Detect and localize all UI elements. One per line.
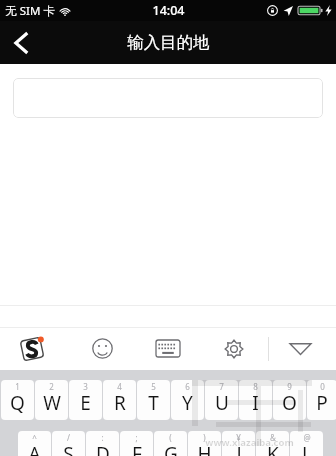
staticText: 9 [287,381,292,392]
button[interactable]: 6 [171,380,204,420]
button[interactable]: 2 [35,380,68,420]
staticText: 2 [49,381,54,392]
staticText: W [43,390,61,416]
staticText: 6 [185,381,190,392]
staticText: R [114,390,126,416]
button[interactable]: Keyboard layout [146,327,190,370]
staticText: G [164,441,178,456]
button[interactable]: 7 [205,380,238,420]
button[interactable]: 0 [307,380,336,420]
staticText: ^ [32,432,37,443]
staticText: D [96,441,110,456]
staticText: 4 [117,381,122,392]
staticText: 14:04 [152,2,185,19]
staticText: J [236,441,242,456]
staticText: 3 [83,381,88,392]
staticText: 1 [15,381,20,392]
staticText: / [67,432,70,443]
button[interactable] [13,78,323,118]
staticText: 8 [253,381,258,392]
button[interactable]: Hide keyboard [278,327,322,370]
staticText: ) [203,432,206,443]
staticText: P [316,390,328,416]
button[interactable]: Back [0,21,44,64]
button[interactable]: Settings [212,327,256,370]
staticText: ; [135,432,138,443]
staticText: Q [10,390,25,416]
staticText: S [63,441,74,456]
staticText: I [252,390,259,416]
staticText: E [80,390,91,416]
button[interactable]: : [86,431,119,456]
staticText: 输入目的地 [127,32,210,53]
staticText: H [197,441,212,456]
button[interactable]: ; [120,431,153,456]
button[interactable]: 3 [69,380,102,420]
button[interactable]: ) [188,431,221,456]
staticText: @ [303,432,311,443]
staticText: 无 SIM 卡 [5,3,55,19]
staticText: T [148,390,159,416]
staticText: www.xiazaiba.com [205,436,294,449]
staticText: ( [169,432,172,443]
staticText: 7 [219,381,224,392]
button[interactable]: 5 [137,380,170,420]
button[interactable]: Sogou input method [9,327,55,370]
staticText: & [270,432,276,443]
button[interactable]: ^ [18,431,51,456]
button[interactable]: / [52,431,85,456]
staticText: U [215,390,229,416]
button[interactable]: 8 [239,380,272,420]
button[interactable]: ( [154,431,187,456]
button[interactable]: & [256,431,289,456]
button[interactable]: @ [290,431,323,456]
button[interactable]: 4 [103,380,136,420]
staticText: L [302,441,312,456]
staticText: ¥ [236,432,241,443]
staticText: A [28,441,41,456]
staticText: O [282,390,297,416]
button[interactable]: 9 [273,380,306,420]
staticText: : [101,432,104,443]
staticText: K [267,441,279,456]
staticText: 5 [151,381,156,392]
button[interactable]: 1 [1,380,34,420]
staticText: F [132,441,142,456]
button[interactable]: ¥ [222,431,255,456]
button[interactable]: Emoji [80,327,124,370]
staticText: Y [182,390,193,416]
staticText: 0 [320,381,325,392]
